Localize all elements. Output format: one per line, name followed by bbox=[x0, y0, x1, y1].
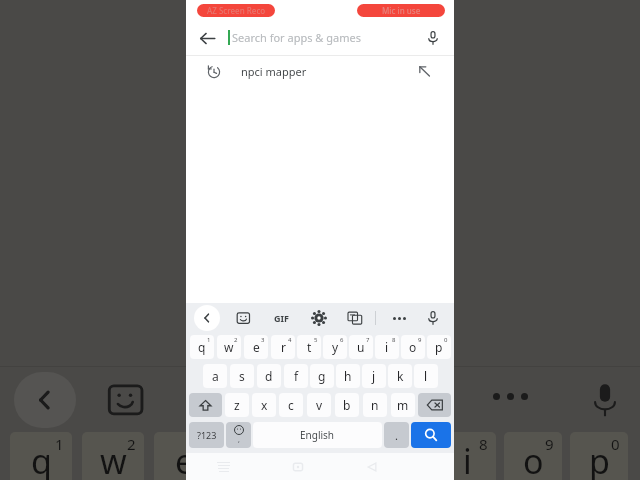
staticText: 8 bbox=[479, 434, 488, 454]
button[interactable]: b bbox=[335, 393, 359, 417]
staticText: j bbox=[372, 368, 376, 384]
button[interactable]: p bbox=[427, 335, 451, 359]
button[interactable]: ?123 bbox=[189, 422, 224, 448]
button[interactable]: z bbox=[225, 393, 249, 417]
staticText: w bbox=[224, 339, 234, 355]
staticText: b bbox=[343, 397, 351, 413]
staticText: 1 bbox=[207, 336, 211, 344]
staticText: l bbox=[424, 368, 428, 384]
staticText: Search for apps & games bbox=[232, 30, 420, 45]
button[interactable]: l bbox=[414, 364, 438, 388]
staticText: . bbox=[395, 428, 398, 443]
button[interactable]: s bbox=[230, 364, 254, 388]
staticText: 7 bbox=[366, 336, 370, 344]
staticText: h bbox=[344, 368, 352, 384]
staticText: 4 bbox=[288, 336, 292, 344]
button[interactable]: e bbox=[244, 335, 268, 359]
button[interactable]: f bbox=[284, 364, 308, 388]
staticText: v bbox=[316, 397, 323, 413]
staticText: GIF bbox=[274, 312, 289, 324]
staticText: w bbox=[100, 438, 127, 480]
staticText: k bbox=[397, 368, 404, 384]
staticText: s bbox=[239, 368, 245, 384]
button[interactable]: g bbox=[310, 364, 334, 388]
button[interactable]: v bbox=[307, 393, 331, 417]
button[interactable]: Emoji bbox=[226, 422, 251, 448]
staticText: u bbox=[357, 339, 365, 355]
button[interactable]: English bbox=[253, 422, 382, 448]
button[interactable]: AZ Screen Reco bbox=[197, 4, 275, 17]
button[interactable]: Voice search bbox=[420, 25, 446, 51]
staticText: 5 bbox=[314, 336, 318, 344]
staticText: 3 bbox=[199, 434, 208, 454]
button[interactable]: Shift bbox=[189, 393, 222, 417]
staticText: 8 bbox=[392, 336, 396, 344]
staticText: Mic in use bbox=[382, 5, 421, 16]
button[interactable]: u bbox=[349, 335, 373, 359]
staticText: r bbox=[281, 339, 286, 355]
staticText: i bbox=[463, 438, 472, 480]
staticText: q bbox=[31, 438, 52, 480]
button[interactable]: Stickers bbox=[231, 306, 255, 330]
button[interactable]: w bbox=[217, 335, 241, 359]
staticText: e bbox=[253, 339, 260, 355]
staticText: p bbox=[589, 438, 610, 480]
staticText: t bbox=[307, 339, 312, 355]
staticText: 6 bbox=[340, 336, 344, 344]
staticText: f bbox=[294, 368, 299, 384]
staticText: x bbox=[261, 397, 268, 413]
staticText: e bbox=[175, 438, 195, 480]
staticText: 2 bbox=[234, 336, 238, 344]
staticText: ?123 bbox=[197, 429, 217, 441]
staticText: 9 bbox=[545, 434, 554, 454]
button[interactable]: Translate bbox=[343, 306, 367, 330]
button[interactable]: h bbox=[336, 364, 360, 388]
staticText: y bbox=[332, 339, 339, 355]
staticText: 2 bbox=[127, 434, 136, 454]
button[interactable]: q bbox=[190, 335, 214, 359]
button[interactable]: n bbox=[363, 393, 387, 417]
button[interactable]: d bbox=[257, 364, 281, 388]
button[interactable]: Voice input bbox=[421, 306, 445, 330]
button[interactable]: j bbox=[362, 364, 386, 388]
staticText: d bbox=[265, 368, 273, 384]
button[interactable]: o bbox=[401, 335, 425, 359]
button[interactable]: r bbox=[271, 335, 295, 359]
button[interactable]: More options bbox=[386, 305, 412, 331]
button[interactable]: Back bbox=[192, 23, 222, 53]
staticText: q bbox=[198, 339, 206, 355]
button[interactable]: y bbox=[323, 335, 347, 359]
staticText: i bbox=[385, 339, 389, 355]
staticText: npci mapper bbox=[241, 64, 416, 79]
button[interactable]: GIF bbox=[267, 304, 295, 332]
button[interactable]: a bbox=[203, 364, 227, 388]
staticText: AZ Screen Reco bbox=[207, 5, 266, 16]
button[interactable]: i bbox=[375, 335, 399, 359]
staticText: 0 bbox=[444, 336, 448, 344]
button[interactable]: Settings bbox=[307, 306, 331, 330]
staticText: p bbox=[435, 339, 443, 355]
button[interactable]: Mic in use bbox=[357, 4, 445, 17]
button[interactable]: t bbox=[297, 335, 321, 359]
staticText: , bbox=[238, 435, 240, 445]
staticText: z bbox=[234, 397, 240, 413]
button[interactable]: c bbox=[279, 393, 303, 417]
button[interactable]: Backspace bbox=[418, 393, 451, 417]
staticText: 1 bbox=[55, 434, 64, 454]
staticText: o bbox=[409, 339, 417, 355]
staticText: 3 bbox=[261, 336, 265, 344]
button[interactable]: Back bbox=[194, 305, 220, 331]
button[interactable]: npci mapper bbox=[186, 56, 454, 86]
staticText: g bbox=[318, 368, 326, 384]
staticText: 9 bbox=[418, 336, 422, 344]
staticText: c bbox=[288, 397, 294, 413]
button[interactable]: Search bbox=[411, 422, 451, 448]
button[interactable]: m bbox=[391, 393, 415, 417]
button[interactable]: k bbox=[388, 364, 412, 388]
button[interactable]: x bbox=[252, 393, 276, 417]
staticText: a bbox=[212, 368, 219, 384]
button[interactable]: . bbox=[384, 422, 409, 448]
